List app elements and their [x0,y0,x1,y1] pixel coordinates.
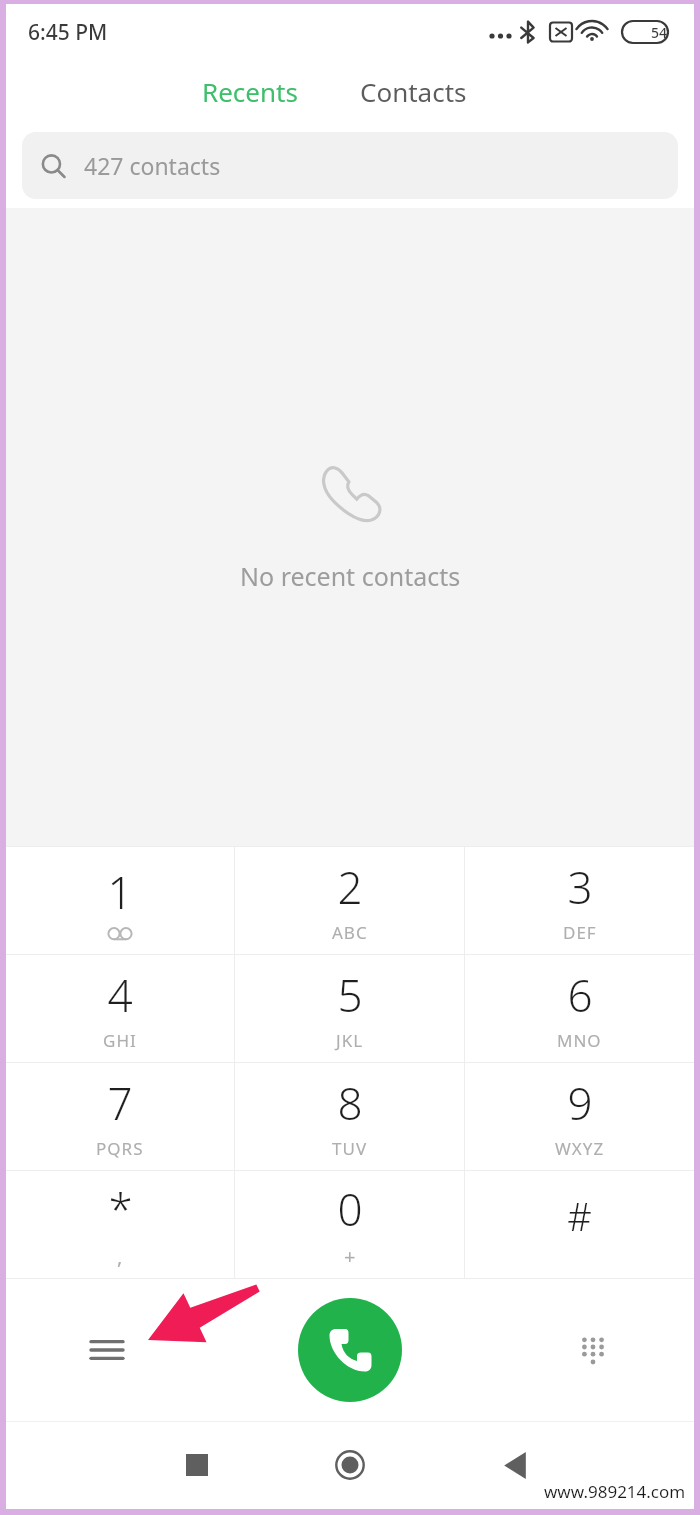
button[interactable]: Home [319,1434,381,1496]
button[interactable]: Call history menu [78,1321,136,1379]
staticText: 9 [567,1073,593,1133]
button[interactable]: 2 [235,847,464,954]
staticText: WXYZ [555,1137,605,1160]
staticText: 7 [107,1073,133,1133]
button[interactable]: Dialpad [564,1321,622,1379]
staticText: 3 [567,857,593,917]
button[interactable]: Recents [192,66,308,117]
staticText: www.989214.com [544,1480,686,1503]
staticText: 6 [567,965,593,1025]
staticText: TUV [332,1137,368,1160]
staticText: 1 [107,862,133,922]
staticText: 2 [337,857,363,917]
staticText: PQRS [96,1137,144,1160]
staticText: 4 [107,965,133,1025]
button[interactable]: Contacts [350,66,477,117]
staticText: 427 contacts [84,150,221,181]
button[interactable]: 8 [235,1063,464,1170]
button[interactable]: 3 [465,847,694,954]
staticText: + [344,1243,357,1270]
staticText: GHI [103,1029,137,1052]
staticText: 6:45 PM [28,18,108,47]
button[interactable]: 9 [465,1063,694,1170]
staticText: No recent contacts [240,559,461,593]
staticText: 5 [337,965,363,1025]
button[interactable]: Recent apps [166,1434,228,1496]
button[interactable]: 6 [465,955,694,1062]
staticText: DEF [563,921,597,944]
staticText: Recents [202,74,298,109]
button[interactable]: # [465,1171,694,1278]
staticText: ABC [332,921,368,944]
button[interactable]: 1 [6,847,234,954]
staticText: # [567,1190,592,1242]
staticText: Contacts [360,74,467,109]
staticText: , [117,1243,124,1270]
staticText: 8 [337,1073,363,1133]
staticText: JKL [336,1029,364,1052]
button[interactable]: Call [298,1298,402,1402]
button[interactable]: 7 [6,1063,234,1170]
button[interactable]: Back [484,1434,546,1496]
staticText: 0 [337,1179,363,1239]
button[interactable]: 4 [6,955,234,1062]
button[interactable]: 0 [235,1171,464,1278]
button[interactable]: * [6,1171,234,1278]
staticText: MNO [557,1029,602,1052]
staticText: 54 [651,23,668,42]
staticText: * [108,1179,133,1239]
button[interactable]: 5 [235,955,464,1062]
button[interactable]: 427 contacts [22,132,678,199]
